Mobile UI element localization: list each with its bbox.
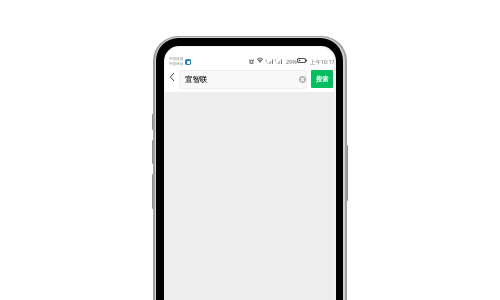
button[interactable]: 搜索 [311, 70, 333, 88]
staticText: 宣智联 [185, 75, 208, 84]
button[interactable]: Clear text [297, 74, 307, 85]
button[interactable]: 宣智联 [179, 70, 307, 89]
staticText: 搜索 [316, 75, 329, 83]
staticText: 4 [265, 58, 268, 63]
staticText: 上午10:17 [310, 58, 334, 65]
staticText: 29% [286, 58, 297, 65]
button[interactable]: Back [165, 69, 180, 85]
staticText: 中国联通 [169, 57, 184, 62]
staticText: 中国移动 [169, 62, 184, 67]
staticText: 3 [274, 58, 277, 63]
